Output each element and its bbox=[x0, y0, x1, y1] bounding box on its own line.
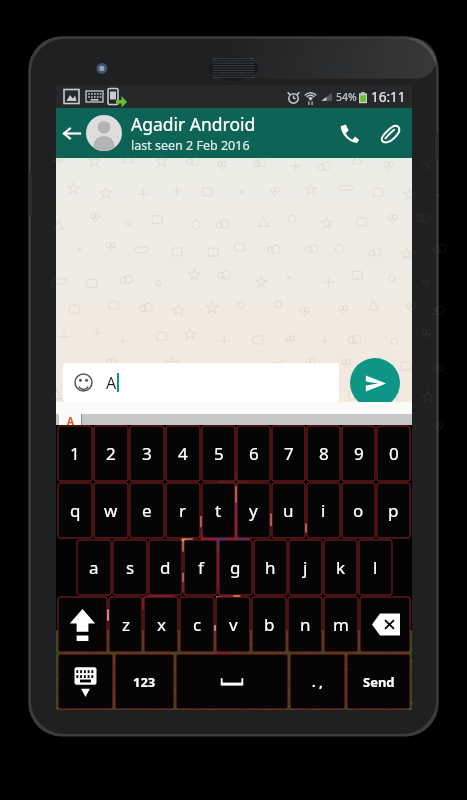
button[interactable]: . , bbox=[290, 654, 345, 709]
staticText: 2 bbox=[106, 442, 116, 465]
button[interactable]: v bbox=[216, 597, 250, 652]
button[interactable]: i bbox=[307, 483, 340, 538]
button[interactable]: 2 bbox=[94, 426, 128, 481]
staticText: k bbox=[336, 556, 346, 579]
staticText: x bbox=[157, 613, 166, 636]
button[interactable]: m bbox=[324, 597, 358, 652]
button[interactable]: Emoji bbox=[63, 363, 339, 402]
button[interactable]: Send bbox=[347, 654, 410, 709]
button[interactable]: Call bbox=[328, 108, 370, 158]
staticText: l bbox=[373, 556, 378, 579]
button[interactable]: w bbox=[94, 483, 128, 538]
staticText: . , bbox=[312, 673, 323, 691]
button[interactable]: 9 bbox=[342, 426, 375, 481]
button[interactable]: k bbox=[324, 540, 357, 595]
staticText: Agadir Android bbox=[131, 112, 256, 136]
staticText: b bbox=[264, 613, 275, 636]
button[interactable]: h bbox=[254, 540, 287, 595]
staticText: t bbox=[215, 499, 222, 522]
staticText: 8 bbox=[319, 442, 329, 465]
staticText: last seen 2 Feb 2016 bbox=[131, 137, 250, 154]
staticText: r bbox=[179, 499, 187, 522]
button[interactable]: 3 bbox=[130, 426, 164, 481]
button[interactable]: Agadir Android bbox=[131, 108, 328, 158]
staticText: A bbox=[106, 372, 117, 394]
button[interactable]: d bbox=[149, 540, 182, 595]
button[interactable]: o bbox=[342, 483, 375, 538]
button[interactable]: l bbox=[359, 540, 392, 595]
staticText: A bbox=[67, 414, 74, 425]
button[interactable]: Send bbox=[350, 358, 400, 408]
button[interactable]: c bbox=[180, 597, 214, 652]
staticText: h bbox=[265, 556, 276, 579]
staticText: 0 bbox=[389, 442, 399, 465]
button[interactable]: z bbox=[109, 597, 142, 652]
button[interactable]: Contact photo bbox=[86, 115, 122, 151]
staticText: g bbox=[230, 556, 241, 579]
button[interactable]: j bbox=[289, 540, 322, 595]
staticText: Send bbox=[363, 673, 395, 691]
button[interactable]: A bbox=[59, 414, 81, 425]
staticText: v bbox=[229, 613, 238, 636]
staticText: w bbox=[104, 499, 118, 522]
staticText: 6 bbox=[249, 442, 259, 465]
button[interactable]: 4 bbox=[166, 426, 200, 481]
staticText: m bbox=[333, 613, 349, 636]
staticText: q bbox=[70, 499, 81, 522]
button[interactable]: t bbox=[202, 483, 235, 538]
staticText: z bbox=[122, 613, 130, 636]
button[interactable]: Back bbox=[56, 108, 86, 158]
staticText: i bbox=[321, 499, 326, 522]
button[interactable]: f bbox=[184, 540, 217, 595]
staticText: 123 bbox=[133, 673, 156, 691]
staticText: p bbox=[388, 499, 399, 522]
staticText: 9 bbox=[354, 442, 364, 465]
button[interactable]: 8 bbox=[307, 426, 340, 481]
button[interactable]: Attach bbox=[370, 108, 412, 158]
button[interactable]: Space bbox=[176, 654, 288, 709]
button[interactable]: 7 bbox=[272, 426, 305, 481]
button[interactable]: 0 bbox=[377, 426, 410, 481]
staticText: u bbox=[283, 499, 294, 522]
button[interactable]: q bbox=[58, 483, 92, 538]
staticText: 5 bbox=[214, 442, 224, 465]
button[interactable]: 5 bbox=[202, 426, 235, 481]
button[interactable]: Backspace bbox=[360, 597, 410, 652]
staticText: d bbox=[160, 556, 171, 579]
button[interactable]: 123 bbox=[115, 654, 174, 709]
button[interactable]: r bbox=[166, 483, 200, 538]
staticText: 16:11 bbox=[371, 88, 406, 106]
button[interactable]: y bbox=[237, 483, 270, 538]
staticText: 1 bbox=[70, 442, 80, 465]
button[interactable]: n bbox=[288, 597, 322, 652]
button[interactable]: 6 bbox=[237, 426, 270, 481]
button[interactable]: s bbox=[113, 540, 147, 595]
staticText: a bbox=[89, 556, 99, 579]
button[interactable]: Shift bbox=[58, 597, 107, 652]
staticText: 54% bbox=[336, 90, 357, 104]
staticText: s bbox=[126, 556, 135, 579]
staticText: 3 bbox=[142, 442, 152, 465]
button[interactable]: Hide keyboard bbox=[58, 654, 113, 709]
other: Emoji bbox=[74, 373, 93, 392]
button[interactable]: u bbox=[272, 483, 305, 538]
staticText: n bbox=[300, 613, 311, 636]
staticText: e bbox=[142, 499, 152, 522]
staticText: f bbox=[198, 556, 204, 579]
button[interactable]: b bbox=[252, 597, 286, 652]
staticText: y bbox=[249, 499, 258, 522]
staticText: 7 bbox=[284, 442, 294, 465]
button[interactable]: 1 bbox=[58, 426, 92, 481]
button[interactable]: e bbox=[130, 483, 164, 538]
staticText: 4 bbox=[178, 442, 188, 465]
button[interactable]: a bbox=[77, 540, 111, 595]
staticText: o bbox=[353, 499, 364, 522]
staticText: j bbox=[303, 556, 308, 579]
staticText: c bbox=[193, 613, 202, 636]
button[interactable]: x bbox=[144, 597, 178, 652]
button[interactable]: g bbox=[219, 540, 252, 595]
button[interactable]: p bbox=[377, 483, 410, 538]
